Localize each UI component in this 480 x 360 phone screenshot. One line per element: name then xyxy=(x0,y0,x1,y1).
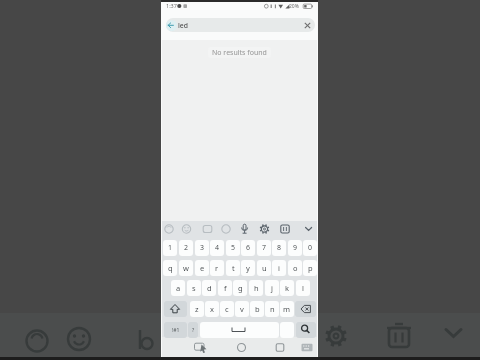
staticText: e xyxy=(200,263,205,273)
button[interactable] xyxy=(166,18,315,32)
staticText: a xyxy=(176,283,181,293)
button[interactable]: z xyxy=(190,301,204,317)
staticText: 3 xyxy=(200,243,205,253)
button[interactable] xyxy=(302,222,316,236)
button[interactable]: w xyxy=(179,260,193,276)
staticText: d xyxy=(207,283,212,293)
button[interactable]: n xyxy=(265,301,279,317)
button[interactable]: y xyxy=(241,260,255,276)
button[interactable] xyxy=(234,339,250,355)
button[interactable]: g xyxy=(233,280,247,296)
staticText: o xyxy=(293,263,298,273)
button[interactable]: !#1 xyxy=(164,322,187,338)
button[interactable]: t xyxy=(226,260,240,276)
staticText: g xyxy=(238,283,243,293)
button[interactable] xyxy=(164,301,187,317)
button[interactable]: p xyxy=(303,260,317,276)
button[interactable]: a xyxy=(171,280,185,296)
button[interactable]: k xyxy=(280,280,294,296)
button[interactable]: 8 xyxy=(272,240,286,256)
button[interactable]: l xyxy=(296,280,310,296)
button[interactable] xyxy=(201,222,215,236)
button[interactable] xyxy=(272,339,288,355)
button[interactable]: f xyxy=(218,280,232,296)
button[interactable]: e xyxy=(195,260,209,276)
staticText: w xyxy=(183,263,189,273)
staticText: s xyxy=(192,283,196,293)
staticText: 1 xyxy=(168,243,173,253)
staticText: 8 xyxy=(277,243,282,253)
button[interactable]: i xyxy=(272,260,286,276)
staticText: n xyxy=(270,304,275,314)
staticText: 0 xyxy=(308,243,313,253)
staticText: 2 xyxy=(184,243,189,253)
staticText: b xyxy=(255,304,260,314)
button[interactable]: u xyxy=(257,260,271,276)
staticText: h xyxy=(254,283,259,293)
staticText: 6 xyxy=(246,243,251,253)
staticText: c xyxy=(225,304,229,314)
button[interactable] xyxy=(238,222,252,236)
staticText: 9 xyxy=(293,243,298,253)
button[interactable]: o xyxy=(288,260,302,276)
staticText: j xyxy=(271,283,273,293)
button[interactable]: 5 xyxy=(226,240,240,256)
staticText: v xyxy=(240,304,244,314)
button[interactable] xyxy=(166,20,177,31)
button[interactable]: b xyxy=(250,301,264,317)
button[interactable] xyxy=(278,222,292,236)
staticText: u xyxy=(262,263,267,273)
button[interactable]: 7 xyxy=(257,240,271,256)
button[interactable]: 0 xyxy=(303,240,317,256)
staticText: !#1 xyxy=(172,327,180,334)
button[interactable] xyxy=(299,339,315,355)
staticText: 5 xyxy=(231,243,236,253)
button[interactable] xyxy=(200,322,279,338)
button[interactable] xyxy=(219,222,233,236)
staticText: r xyxy=(215,263,219,273)
button[interactable] xyxy=(258,222,272,236)
button[interactable] xyxy=(280,322,294,338)
staticText: l xyxy=(302,283,304,293)
staticText: 4 xyxy=(215,243,220,253)
staticText: i xyxy=(278,263,280,273)
button[interactable]: 3 xyxy=(195,240,209,256)
staticText: f xyxy=(224,283,227,293)
button[interactable]: d xyxy=(202,280,216,296)
button[interactable]: 2 xyxy=(179,240,193,256)
button[interactable]: 6 xyxy=(241,240,255,256)
staticText: q xyxy=(168,263,173,273)
staticText: m xyxy=(283,304,291,314)
button[interactable]: q xyxy=(163,260,177,276)
button[interactable] xyxy=(180,222,194,236)
staticText: k xyxy=(285,283,290,293)
button[interactable]: v xyxy=(235,301,249,317)
button[interactable]: 9 xyxy=(288,240,302,256)
staticText: 7 xyxy=(262,243,267,253)
button[interactable] xyxy=(295,301,316,317)
staticText: t xyxy=(232,263,235,273)
staticText: ? xyxy=(192,327,195,334)
button[interactable]: h xyxy=(249,280,263,296)
button[interactable]: s xyxy=(187,280,201,296)
staticText: 20% xyxy=(289,3,299,10)
staticText: No results found xyxy=(212,48,267,58)
button[interactable]: c xyxy=(220,301,234,317)
button[interactable] xyxy=(296,322,316,338)
button[interactable] xyxy=(162,222,176,236)
staticText: y xyxy=(246,263,250,273)
button[interactable]: j xyxy=(265,280,279,296)
button[interactable]: 1 xyxy=(163,240,177,256)
staticText: led xyxy=(178,21,188,30)
staticText: z xyxy=(195,304,199,314)
staticText: x xyxy=(210,304,214,314)
button[interactable]: m xyxy=(280,301,294,317)
button[interactable] xyxy=(192,339,208,355)
button[interactable]: r xyxy=(210,260,224,276)
staticText: p xyxy=(308,263,313,273)
staticText: 1:37 xyxy=(166,2,177,9)
button[interactable] xyxy=(161,337,318,357)
button[interactable]: 4 xyxy=(210,240,224,256)
button[interactable]: ? xyxy=(188,322,198,338)
button[interactable]: x xyxy=(205,301,219,317)
